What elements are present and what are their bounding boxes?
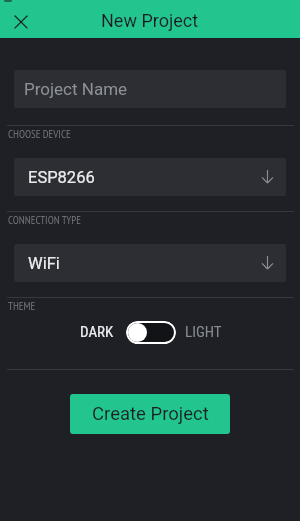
button[interactable]: Theme toggle xyxy=(126,321,176,344)
staticText: THEME xyxy=(8,299,36,313)
staticText: Create Project xyxy=(92,403,209,425)
button[interactable]: Close xyxy=(9,10,32,33)
staticText: CHOOSE DEVICE xyxy=(8,127,71,141)
staticText: WiFi xyxy=(28,254,60,273)
staticText: LIGHT xyxy=(185,323,222,341)
staticText: Project Name xyxy=(24,79,128,99)
staticText: New Project xyxy=(101,10,199,31)
staticText: DARK xyxy=(80,323,114,341)
staticText: CONNECTION TYPE xyxy=(8,213,82,227)
button[interactable]: ESP8266 xyxy=(14,158,286,196)
staticText: ESP8266 xyxy=(28,168,95,187)
button[interactable]: Create Project xyxy=(70,394,230,434)
button[interactable]: Project Name xyxy=(14,70,286,108)
button[interactable]: WiFi xyxy=(14,244,286,282)
